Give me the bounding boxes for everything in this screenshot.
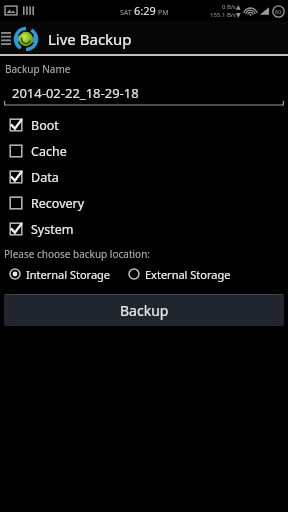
staticText: Recovery <box>31 195 85 212</box>
staticText: 155.1 B/s▼ <box>210 11 241 19</box>
staticText: Backup <box>120 301 169 320</box>
button[interactable]: Boot <box>0 112 288 138</box>
staticText: PM <box>158 8 169 18</box>
staticText: Boot <box>31 117 59 134</box>
staticText: Live Backup <box>48 29 132 49</box>
button[interactable]: Recovery <box>0 190 288 216</box>
button[interactable]: Backup <box>4 294 284 326</box>
button[interactable]: Data <box>0 164 288 190</box>
staticText: System <box>31 221 74 238</box>
staticText: SAT <box>120 8 132 18</box>
staticText: Backup Name <box>5 62 71 76</box>
staticText: External Storage <box>145 267 231 282</box>
staticText: 6:29 <box>134 3 156 18</box>
staticText: 0 B/s▲ <box>222 3 241 11</box>
staticText: Data <box>31 169 59 186</box>
button[interactable]: External Storage <box>119 264 231 284</box>
button[interactable]: System <box>0 216 288 242</box>
button[interactable]: Navigation drawer <box>0 21 12 56</box>
staticText: Cache <box>31 143 67 160</box>
staticText: Internal Storage <box>26 267 111 282</box>
button[interactable]: 2014-02-22_18-29-18 <box>4 80 284 106</box>
button[interactable]: Internal Storage <box>0 264 111 284</box>
staticText: 2014-02-22_18-29-18 <box>12 84 139 102</box>
staticText: Please choose backup location: <box>4 247 150 261</box>
button[interactable]: Cache <box>0 138 288 164</box>
staticText: 60 <box>275 8 282 15</box>
